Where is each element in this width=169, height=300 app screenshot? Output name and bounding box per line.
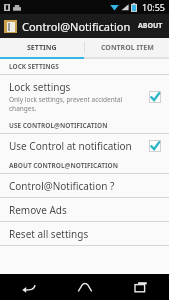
staticText: Control@Notification [22,19,131,34]
button[interactable]: SETTING [0,38,84,57]
staticText: CONTROL ITEM [101,43,154,53]
staticText: Use Control at notification [9,139,132,153]
staticText: ABOUT CONTROL@NOTIFICATION [9,161,118,170]
staticText: 10:55 [142,1,166,13]
other: Toggle setting [149,140,161,152]
staticText: USE CONTROL@NOTIFICATION [9,121,108,130]
staticText: SETTING [27,43,57,53]
button[interactable]: ABOUT [132,14,169,38]
button[interactable]: Back [0,274,57,300]
other: Toggle setting [149,91,161,103]
button[interactable]: Lock settings [0,75,169,118]
button[interactable]: Use Control at notification [0,134,169,158]
staticText: Only lock settings, prevent accidental c… [9,95,123,113]
staticText: ABOUT [138,21,163,31]
button[interactable]: Recent apps [113,274,169,300]
button[interactable]: CONTROL ITEM [85,38,169,57]
staticText: Control@Notification ? [9,179,115,193]
button[interactable]: Control@Notification ? [0,174,169,197]
staticText: Reset all settings [9,227,89,241]
button[interactable]: Reset all settings [0,222,169,245]
button[interactable]: Remove Ads [0,198,169,221]
staticText: Remove Ads [9,203,67,217]
staticText: LOCK SETTINGS [9,62,59,71]
button[interactable]: Home [57,274,113,300]
staticText: Lock settings [9,80,71,94]
